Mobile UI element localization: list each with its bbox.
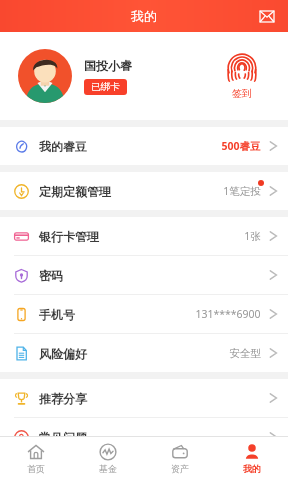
button[interactable]: Messages bbox=[254, 3, 280, 29]
button[interactable]: 风险偏好 bbox=[0, 334, 288, 372]
staticText: 500睿豆 bbox=[221, 139, 261, 153]
button[interactable]: 已绑卡 bbox=[84, 79, 127, 95]
button[interactable]: 银行卡管理 bbox=[0, 217, 288, 255]
button[interactable]: 首页 bbox=[0, 437, 72, 480]
button[interactable]: 基金 bbox=[72, 437, 144, 480]
staticText: 风险偏好 bbox=[39, 346, 87, 361]
staticText: 1张 bbox=[244, 229, 261, 243]
staticText: 1笔定投 bbox=[223, 184, 261, 198]
button[interactable]: 签到 bbox=[223, 49, 261, 104]
staticText: 首页 bbox=[27, 463, 45, 474]
button[interactable]: 我的 bbox=[216, 437, 288, 480]
button[interactable]: 推荐分享 bbox=[0, 379, 288, 417]
staticText: 推荐分享 bbox=[39, 391, 87, 406]
staticText: 银行卡管理 bbox=[39, 229, 99, 244]
staticText: 我的 bbox=[243, 463, 261, 474]
staticText: 国投小睿 bbox=[84, 58, 132, 73]
staticText: 我的 bbox=[131, 8, 157, 24]
staticText: 已绑卡 bbox=[91, 81, 120, 93]
staticText: 常见问题 bbox=[39, 430, 87, 445]
button[interactable]: 手机号 bbox=[0, 295, 288, 333]
button[interactable]: Avatar bbox=[18, 49, 72, 103]
button[interactable]: 资产 bbox=[144, 437, 216, 480]
button[interactable]: 定期定额管理 bbox=[0, 172, 288, 210]
button[interactable]: 我的睿豆 bbox=[0, 127, 288, 165]
staticText: 定期定额管理 bbox=[39, 184, 111, 199]
staticText: 131****6900 bbox=[195, 307, 261, 321]
staticText: 手机号 bbox=[39, 307, 75, 322]
button[interactable]: 密码 bbox=[0, 256, 288, 294]
staticText: 我的睿豆 bbox=[39, 139, 87, 154]
staticText: 签到 bbox=[232, 87, 252, 100]
staticText: 安全型 bbox=[229, 347, 261, 360]
button[interactable]: 常见问题 bbox=[0, 418, 288, 456]
staticText: 资产 bbox=[171, 463, 189, 474]
staticText: 基金 bbox=[99, 463, 117, 474]
staticText: 密码 bbox=[39, 268, 63, 283]
